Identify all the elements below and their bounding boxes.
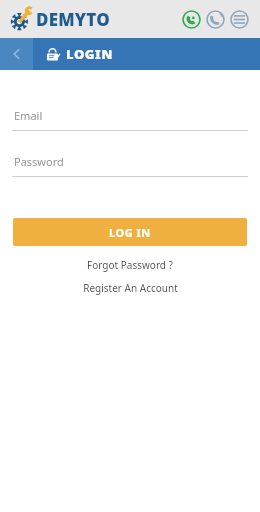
button[interactable]: WhatsApp xyxy=(181,9,201,29)
staticText: DEMYTO xyxy=(36,8,110,31)
staticText: LOGIN xyxy=(66,45,113,63)
button[interactable]: Forgot Password ? xyxy=(0,258,260,272)
button[interactable]: Email xyxy=(12,108,248,131)
button[interactable]: Password xyxy=(12,154,248,177)
button[interactable]: Menu xyxy=(229,9,249,29)
staticText: LOG IN xyxy=(109,225,151,240)
staticText: Password xyxy=(14,154,64,169)
button[interactable]: Register An Account xyxy=(0,281,260,295)
staticText: Forgot Password ? xyxy=(87,258,173,272)
button[interactable]: LOG IN xyxy=(13,218,247,246)
staticText: Email xyxy=(14,108,43,123)
button[interactable]: Back xyxy=(0,38,33,70)
button[interactable]: DEMYTO xyxy=(9,6,110,32)
staticText: Register An Account xyxy=(83,281,178,295)
button[interactable]: Call xyxy=(205,9,225,29)
